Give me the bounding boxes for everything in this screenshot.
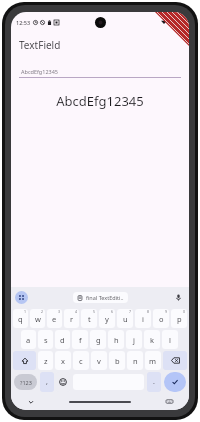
button[interactable]: t xyxy=(81,309,97,328)
button[interactable]: . xyxy=(147,372,161,392)
button[interactable]: q xyxy=(13,309,28,328)
button[interactable]: p xyxy=(171,309,187,328)
button[interactable]: k xyxy=(144,330,160,349)
button[interactable]: c xyxy=(73,351,89,370)
button[interactable]: Emoji xyxy=(56,372,70,392)
staticText: 6 xyxy=(111,309,114,314)
button[interactable]: AbcdEfg12345 xyxy=(19,68,181,78)
button[interactable]: l xyxy=(162,330,178,349)
staticText: p xyxy=(177,314,182,324)
button[interactable]: u xyxy=(117,309,133,328)
staticText: b xyxy=(115,356,120,366)
button[interactable]: v xyxy=(91,351,107,370)
button[interactable]: n xyxy=(127,351,143,370)
staticText: u xyxy=(123,314,128,324)
button[interactable]: a xyxy=(21,330,36,349)
button[interactable]: h xyxy=(108,330,124,349)
button[interactable]: Hide keyboard xyxy=(25,396,36,407)
button[interactable]: s xyxy=(38,330,53,349)
button[interactable]: j xyxy=(126,330,142,349)
staticText: a xyxy=(26,335,31,345)
button[interactable]: g xyxy=(90,330,106,349)
button[interactable]: final TextEditi.. xyxy=(73,292,128,303)
staticText: 1 xyxy=(24,309,27,314)
staticText: r xyxy=(70,314,74,324)
staticText: 2 xyxy=(41,309,44,314)
staticText: 3 xyxy=(58,309,61,314)
staticText: v xyxy=(97,356,101,366)
staticText: 9 xyxy=(165,309,168,314)
staticText: q xyxy=(18,314,23,324)
staticText: 12:53 xyxy=(16,19,31,26)
staticText: l xyxy=(169,335,171,345)
staticText: 7 xyxy=(129,309,132,314)
staticText: o xyxy=(159,314,164,324)
button[interactable]: Enter xyxy=(164,372,186,392)
staticText: 8 xyxy=(147,309,150,314)
staticText: k xyxy=(150,335,155,345)
staticText: n xyxy=(133,356,138,366)
staticText: final TextEditi.. xyxy=(86,294,124,301)
staticText: TextField xyxy=(19,38,61,52)
staticText: i xyxy=(142,314,144,324)
button[interactable]: b xyxy=(109,351,125,370)
button[interactable]: y xyxy=(99,309,115,328)
button[interactable]: w xyxy=(30,309,45,328)
button[interactable]: x xyxy=(55,351,71,370)
staticText: e xyxy=(52,314,57,324)
staticText: AbcdEfg12345 xyxy=(21,68,58,75)
button[interactable]: Shift xyxy=(13,351,36,370)
button[interactable]: i xyxy=(135,309,151,328)
button[interactable]: d xyxy=(55,330,70,349)
button[interactable]: , xyxy=(40,372,54,392)
staticText: h xyxy=(114,335,119,345)
staticText: , xyxy=(46,377,48,387)
staticText: d xyxy=(60,335,65,345)
button[interactable]: Keyboard tools xyxy=(15,291,28,304)
staticText: 0 xyxy=(183,309,186,314)
staticText: z xyxy=(44,356,48,366)
staticText: s xyxy=(44,335,48,345)
staticText: w xyxy=(35,314,41,324)
staticText: . xyxy=(153,377,155,387)
button[interactable]: z xyxy=(38,351,53,370)
button[interactable]: r xyxy=(64,309,79,328)
staticText: AbcdEfg12345 xyxy=(11,92,189,110)
button[interactable]: ?123 xyxy=(14,374,37,390)
button[interactable]: Voice input xyxy=(172,291,185,304)
staticText: y xyxy=(105,314,109,324)
staticText: x xyxy=(61,356,65,366)
button[interactable]: Backspace xyxy=(163,351,187,370)
staticText: c xyxy=(79,356,83,366)
staticText: m xyxy=(149,356,157,366)
staticText: 4 xyxy=(75,309,78,314)
button[interactable]: m xyxy=(145,351,161,370)
button[interactable]: f xyxy=(72,330,88,349)
staticText: 5 xyxy=(93,309,96,314)
button[interactable]: o xyxy=(153,309,169,328)
staticText: j xyxy=(133,335,135,345)
button[interactable]: Switch keyboard xyxy=(164,396,175,407)
staticText: g xyxy=(96,335,101,345)
staticText: ?123 xyxy=(20,379,32,386)
staticText: f xyxy=(79,335,82,345)
staticText: t xyxy=(88,314,91,324)
button[interactable]: e xyxy=(47,309,62,328)
